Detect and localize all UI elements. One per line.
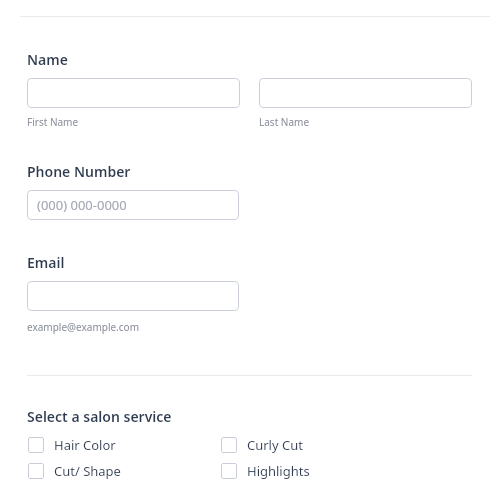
other: Highlights — [221, 463, 237, 479]
staticText: Cut/ Shape — [54, 462, 121, 480]
button[interactable]: Hair Color — [28, 432, 116, 458]
button[interactable]: Highlights — [221, 458, 310, 484]
button[interactable] — [27, 78, 240, 108]
other: Cut/ Shape — [28, 463, 44, 479]
other: Hair Color — [28, 437, 44, 453]
other: Curly Cut — [221, 437, 237, 453]
button[interactable]: Curly Cut — [221, 432, 303, 458]
button[interactable]: (000) 000-0000 — [27, 190, 239, 220]
button[interactable] — [259, 78, 472, 108]
button[interactable] — [27, 281, 239, 311]
staticText: Email — [27, 253, 65, 272]
staticText: Phone Number — [27, 162, 131, 181]
button[interactable]: Cut/ Shape — [28, 458, 121, 484]
staticText: example@example.com — [27, 320, 139, 334]
staticText: First Name — [27, 115, 79, 129]
staticText: Curly Cut — [247, 436, 303, 454]
staticText: (000) 000-0000 — [37, 196, 127, 214]
staticText: Select a salon service — [27, 407, 172, 426]
staticText: Name — [27, 50, 68, 69]
staticText: Highlights — [247, 462, 310, 480]
staticText: Hair Color — [54, 436, 116, 454]
staticText: Last Name — [259, 115, 310, 129]
